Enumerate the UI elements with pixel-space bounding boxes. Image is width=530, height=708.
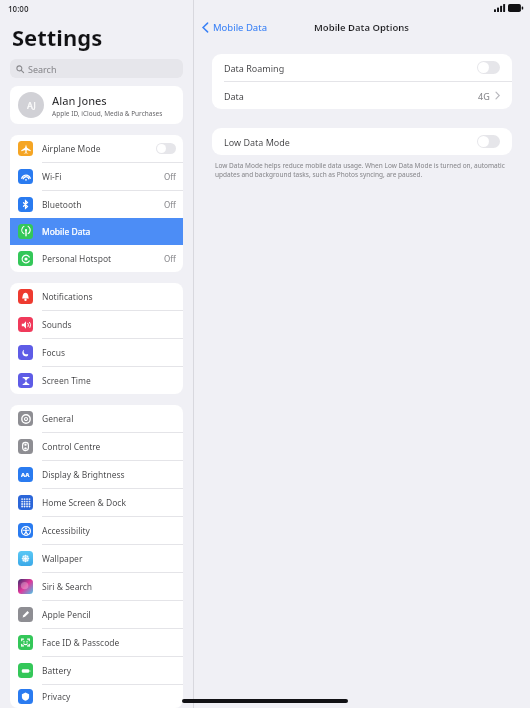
- staticText: Alan Jones: [52, 93, 107, 108]
- button[interactable]: Toggle: [477, 61, 500, 74]
- button[interactable]: Toggle: [156, 143, 176, 154]
- staticText: Siri & Search: [42, 581, 93, 593]
- staticText: Airplane Mode: [42, 143, 101, 155]
- staticText: Bluetooth: [42, 199, 82, 211]
- button[interactable]: AA: [10, 461, 183, 488]
- staticText: AA: [21, 471, 30, 479]
- staticText: Mobile Data: [213, 21, 267, 34]
- staticText: Settings: [12, 22, 103, 52]
- staticText: Personal Hotspot: [42, 253, 112, 265]
- button[interactable]: Wallpaper: [10, 545, 183, 572]
- staticText: Wi-Fi: [42, 171, 62, 183]
- button[interactable]: Siri & Search: [10, 573, 183, 600]
- staticText: Face ID & Passcode: [42, 637, 120, 649]
- staticText: Apple ID, iCloud, Media & Purchases: [52, 109, 163, 118]
- button[interactable]: Data Roaming: [212, 54, 512, 81]
- button[interactable]: Accessibility: [10, 517, 183, 544]
- staticText: Display & Brightness: [42, 469, 125, 481]
- button[interactable]: Airplane Mode: [10, 135, 183, 162]
- button[interactable]: Home Screen & Dock: [10, 489, 183, 516]
- button[interactable]: Focus: [10, 339, 183, 366]
- button[interactable]: Search: [10, 59, 183, 78]
- staticText: AJ: [27, 99, 36, 111]
- staticText: Wallpaper: [42, 553, 83, 565]
- staticText: Focus: [42, 347, 65, 359]
- button[interactable]: Mobile Data: [10, 218, 183, 245]
- staticText: General: [42, 413, 74, 425]
- button[interactable]: Personal Hotspot: [10, 245, 183, 272]
- button[interactable]: Toggle: [477, 135, 500, 148]
- button[interactable]: AJ: [10, 86, 183, 124]
- button[interactable]: Control Centre: [10, 433, 183, 460]
- staticText: Apple Pencil: [42, 609, 91, 621]
- button[interactable]: Screen Time: [10, 367, 183, 394]
- staticText: Off: [164, 171, 176, 182]
- button[interactable]: Data: [212, 82, 512, 109]
- staticText: Low Data Mode: [224, 136, 290, 148]
- staticText: Low Data Mode helps reduce mobile data u…: [215, 161, 509, 179]
- staticText: Search: [28, 63, 57, 75]
- staticText: Mobile Data Options: [314, 21, 410, 34]
- button[interactable]: Low Data Mode: [212, 128, 512, 155]
- staticText: Screen Time: [42, 375, 91, 387]
- button[interactable]: Sounds: [10, 311, 183, 338]
- button[interactable]: Apple Pencil: [10, 601, 183, 628]
- staticText: Accessibility: [42, 525, 90, 537]
- staticText: Sounds: [42, 319, 72, 331]
- button[interactable]: Notifications: [10, 283, 183, 310]
- button[interactable]: Face ID & Passcode: [10, 629, 183, 656]
- staticText: 4G: [478, 90, 490, 102]
- staticText: Off: [164, 253, 176, 264]
- staticText: Off: [164, 199, 176, 210]
- button[interactable]: Privacy: [10, 685, 183, 708]
- staticText: Control Centre: [42, 441, 101, 453]
- staticText: 10:00: [8, 3, 29, 14]
- staticText: Data: [224, 90, 244, 102]
- staticText: Data Roaming: [224, 62, 285, 74]
- staticText: Battery: [42, 665, 72, 677]
- button[interactable]: Wi-Fi: [10, 163, 183, 190]
- button[interactable]: Battery: [10, 657, 183, 684]
- staticText: Notifications: [42, 291, 93, 303]
- button[interactable]: Bluetooth: [10, 191, 183, 218]
- button[interactable]: General: [10, 405, 183, 432]
- staticText: Home Screen & Dock: [42, 497, 126, 509]
- staticText: Mobile Data: [42, 226, 91, 238]
- button[interactable]: Mobile Data: [194, 18, 273, 37]
- staticText: Privacy: [42, 691, 71, 703]
